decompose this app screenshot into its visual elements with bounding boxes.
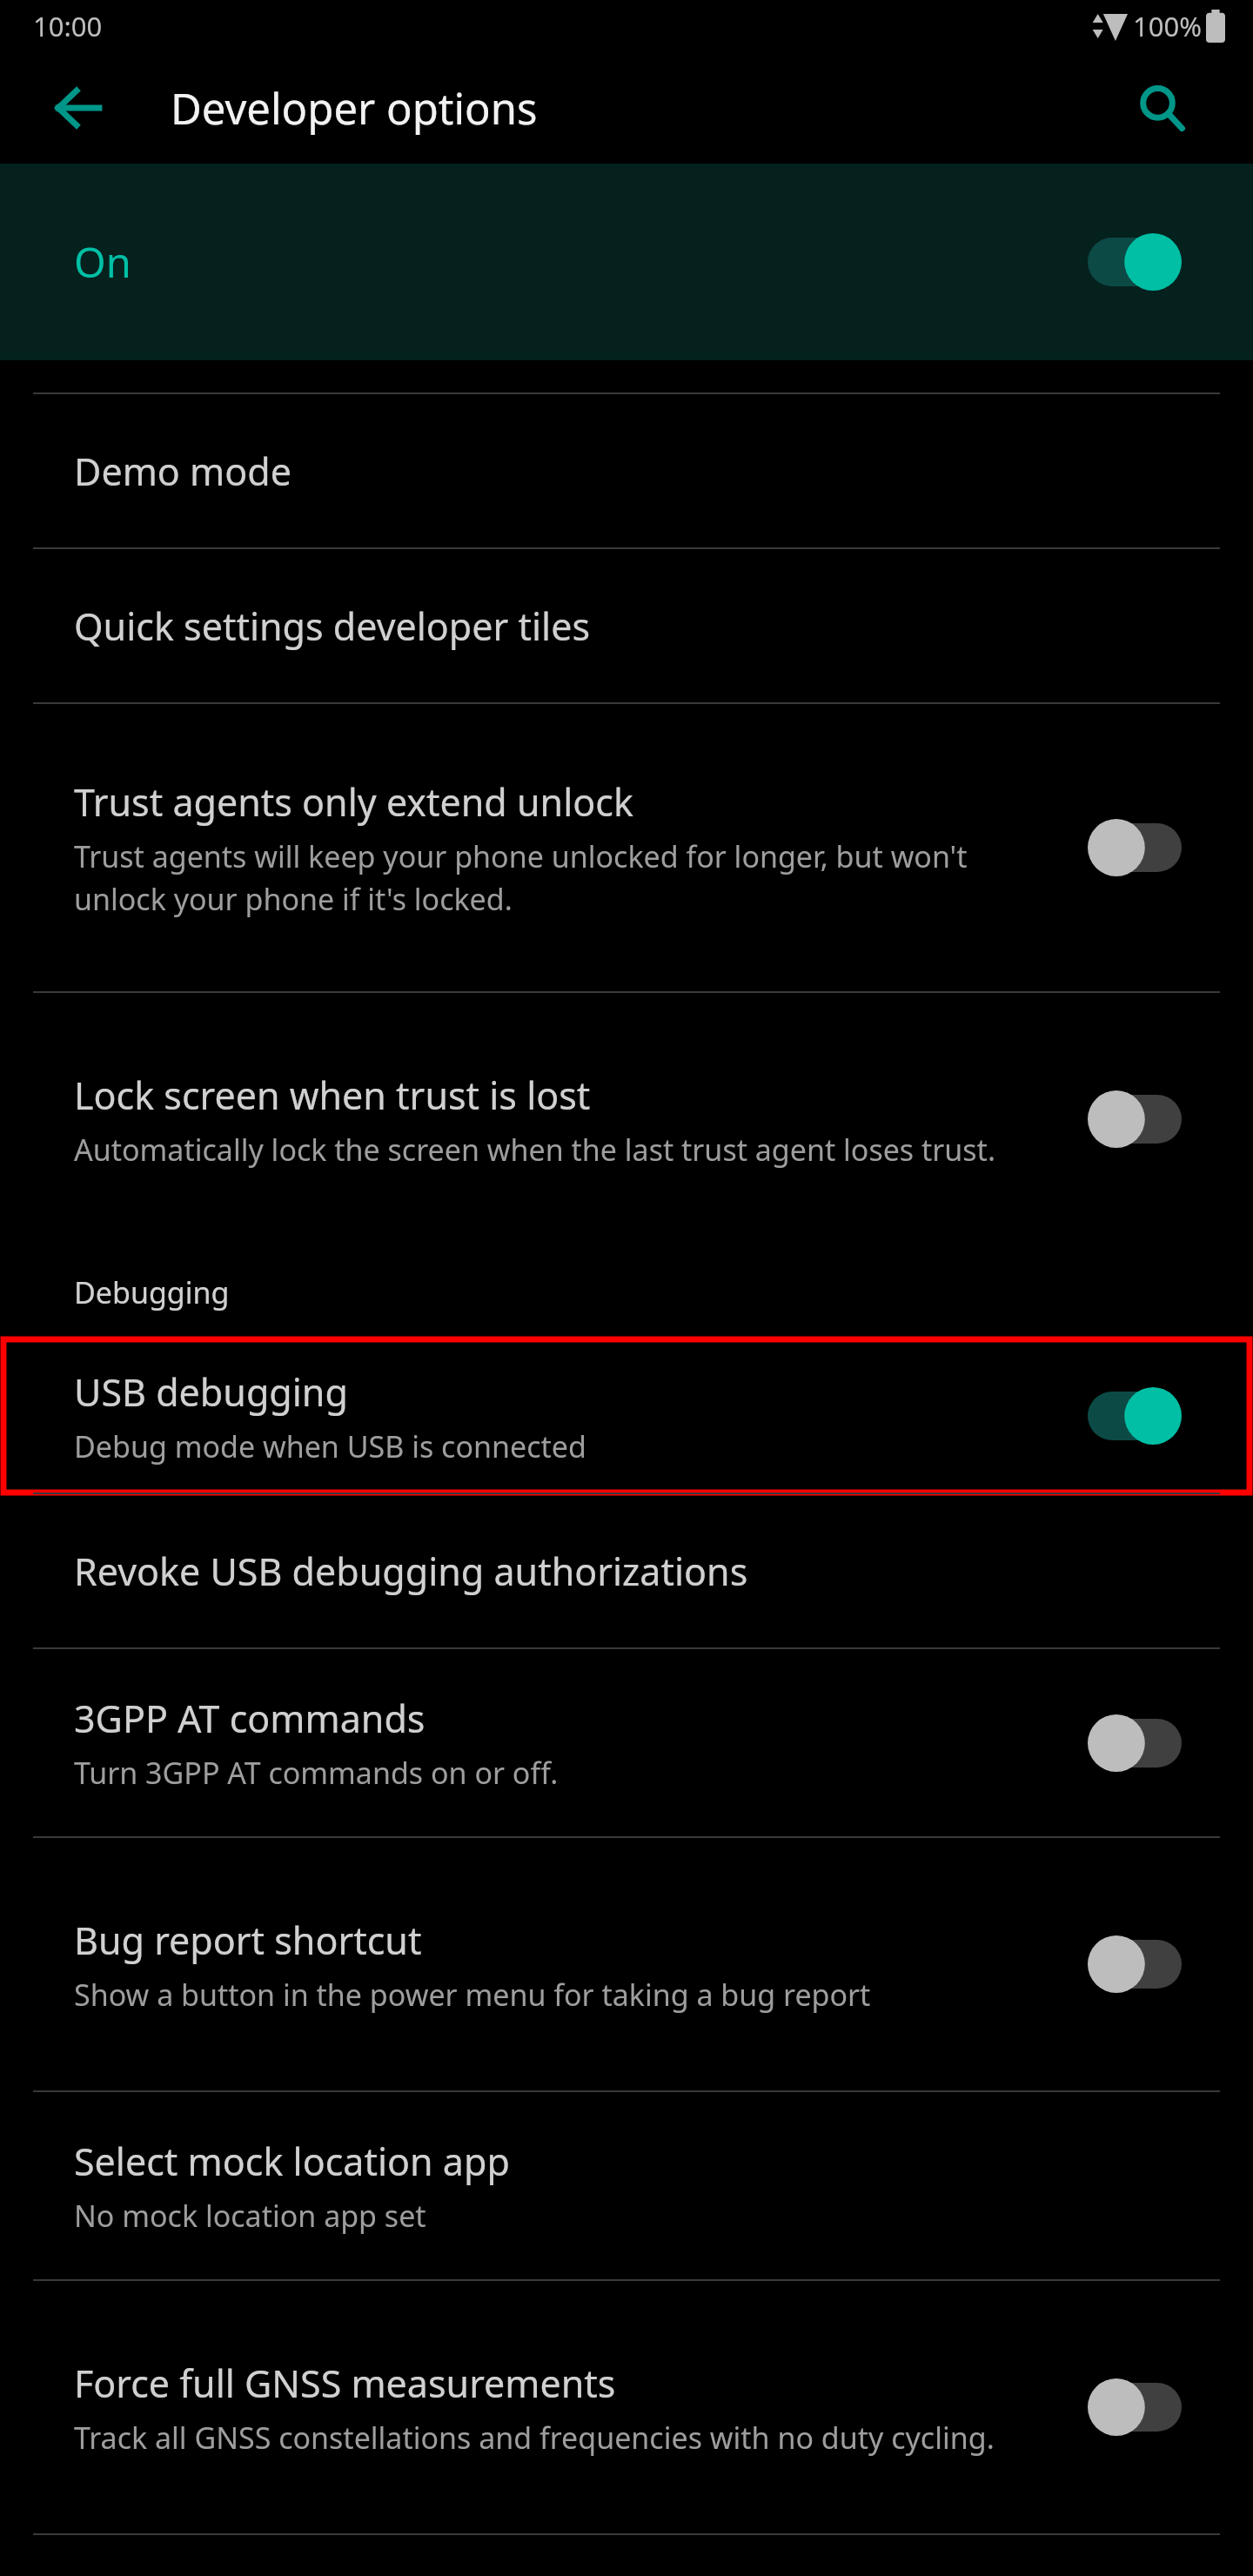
staticText: Debugging	[74, 1272, 230, 1312]
button[interactable]: On	[0, 164, 1253, 360]
staticText: 100%	[1133, 8, 1202, 44]
staticText: Bug report shortcut	[74, 1915, 422, 1966]
staticText: On	[74, 234, 131, 290]
button[interactable]: Select mock location app	[0, 2092, 1253, 2279]
staticText: Quick settings developer tiles	[74, 600, 591, 652]
staticText: USB debugging	[74, 1366, 348, 1418]
button[interactable]: 3GPP AT commands	[0, 1649, 1253, 1836]
staticText: Trust agents will keep your phone unlock…	[74, 836, 1035, 919]
button[interactable]: Quick settings developer tiles	[0, 549, 1253, 702]
staticText: Select mock location app	[74, 2136, 510, 2187]
staticText: No mock location app set	[74, 2196, 426, 2236]
staticText: Force full GNSS measurements	[74, 2358, 616, 2409]
staticText: Automatically lock the screen when the l…	[74, 1130, 995, 1170]
button[interactable]: Bug report shortcut	[0, 1838, 1253, 2090]
staticText: 3GPP AT commands	[74, 1693, 425, 1744]
staticText: Trust agents only extend unlock	[74, 776, 633, 828]
button[interactable]: USB debugging	[3, 1339, 1250, 1493]
button[interactable]: Demo mode	[0, 394, 1253, 547]
staticText: Show a button in the power menu for taki…	[74, 1975, 871, 2015]
staticText: Turn 3GPP AT commands on or off.	[74, 1753, 559, 1793]
button[interactable]: Search	[1131, 77, 1192, 138]
staticText: 10:00	[33, 8, 103, 44]
staticText: Demo mode	[74, 446, 291, 497]
staticText: Lock screen when trust is lost	[74, 1070, 591, 1121]
staticText: Track all GNSS constellations and freque…	[74, 2418, 995, 2458]
staticText: Debug mode when USB is connected	[74, 1426, 586, 1466]
button[interactable]: Trust agents only extend unlock	[0, 704, 1253, 991]
button[interactable]: Back	[54, 84, 103, 132]
button[interactable]: Revoke USB debugging authorizations	[0, 1494, 1253, 1647]
button[interactable]: Lock screen when trust is lost	[0, 993, 1253, 1245]
button[interactable]: Force full GNSS measurements	[0, 2281, 1253, 2533]
staticText: Developer options	[171, 79, 538, 138]
staticText: Revoke USB debugging authorizations	[74, 1546, 748, 1597]
